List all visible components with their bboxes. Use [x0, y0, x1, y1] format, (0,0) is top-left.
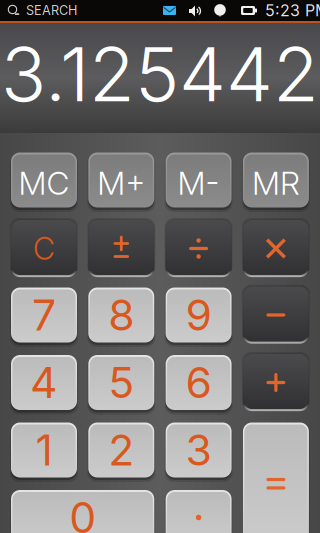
button[interactable]: Equals [243, 422, 309, 533]
button[interactable]: MR [243, 152, 309, 207]
staticText: 7 [32, 289, 56, 341]
button[interactable]: 6 [166, 355, 232, 410]
button[interactable]: C [11, 221, 77, 276]
staticText: 5 [108, 357, 134, 408]
button[interactable]: 2 [88, 422, 154, 477]
button[interactable]: Decimal point [166, 490, 232, 533]
button[interactable]: 0 [11, 490, 154, 533]
staticText: SEARCH [26, 3, 77, 18]
button[interactable]: M+ [88, 152, 154, 207]
button[interactable]: 4 [11, 355, 77, 410]
button[interactable]: Plus minus [88, 221, 154, 276]
staticText: 9 [186, 289, 212, 341]
button[interactable]: Plus [243, 355, 309, 410]
button[interactable]: 3 [166, 422, 232, 477]
staticText: MC [18, 164, 69, 202]
staticText: 4 [30, 357, 58, 408]
staticText: 2 [108, 424, 134, 476]
button[interactable]: Multiply [243, 221, 309, 276]
staticText: 0 [69, 492, 96, 533]
staticText: M- [178, 164, 220, 202]
button[interactable]: M- [166, 152, 232, 207]
button[interactable]: 1 [11, 422, 77, 477]
button[interactable]: Divide [166, 221, 232, 276]
staticText: 5:23 PM [265, 1, 320, 20]
staticText: 8 [108, 289, 134, 341]
button[interactable]: 7 [11, 287, 77, 342]
button[interactable]: 8 [88, 287, 154, 342]
button[interactable]: SEARCH [7, 0, 97, 21]
staticText: 6 [186, 357, 212, 408]
staticText: 3 [186, 424, 212, 476]
button[interactable]: MC [11, 152, 77, 207]
button[interactable]: 5 [88, 355, 154, 410]
staticText: C [33, 230, 55, 267]
staticText: M+ [97, 164, 145, 202]
button[interactable]: 9 [166, 287, 232, 342]
button[interactable]: Minus [243, 287, 309, 342]
staticText: 1 [35, 424, 52, 476]
staticText: 3.125442 [1, 29, 319, 119]
staticText: MR [252, 164, 300, 202]
